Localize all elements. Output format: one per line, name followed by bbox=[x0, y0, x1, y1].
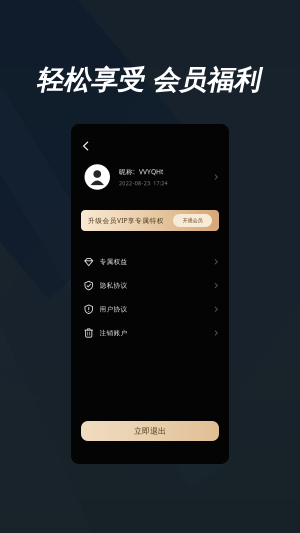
button[interactable]: 立即退出 bbox=[81, 421, 219, 441]
button[interactable]: 用户协议 bbox=[71, 297, 229, 321]
staticText: 昵称: VVYQHt bbox=[119, 167, 163, 176]
staticText: 隐私协议 bbox=[99, 281, 127, 290]
button[interactable]: 升级会员VIP享专属特权 bbox=[81, 210, 219, 231]
staticText: 升级会员VIP享专属特权 bbox=[88, 216, 164, 225]
staticText: 立即退出 bbox=[134, 426, 166, 436]
button[interactable]: Back bbox=[76, 136, 96, 156]
button[interactable]: 注销账户 bbox=[71, 321, 229, 345]
staticText: 开通会员 bbox=[182, 217, 202, 224]
button[interactable]: 昵称: VVYQHt bbox=[71, 158, 229, 196]
staticText: 用户协议 bbox=[99, 305, 127, 313]
staticText: 注销账户 bbox=[99, 329, 127, 337]
button[interactable]: 隐私协议 bbox=[71, 274, 229, 297]
staticText: 2022-08-23 17:24 bbox=[119, 180, 168, 187]
staticText: 专属权益 bbox=[99, 258, 127, 266]
staticText: 轻松享受 会员福利 bbox=[36, 64, 260, 97]
button[interactable]: 专属权益 bbox=[71, 250, 229, 274]
